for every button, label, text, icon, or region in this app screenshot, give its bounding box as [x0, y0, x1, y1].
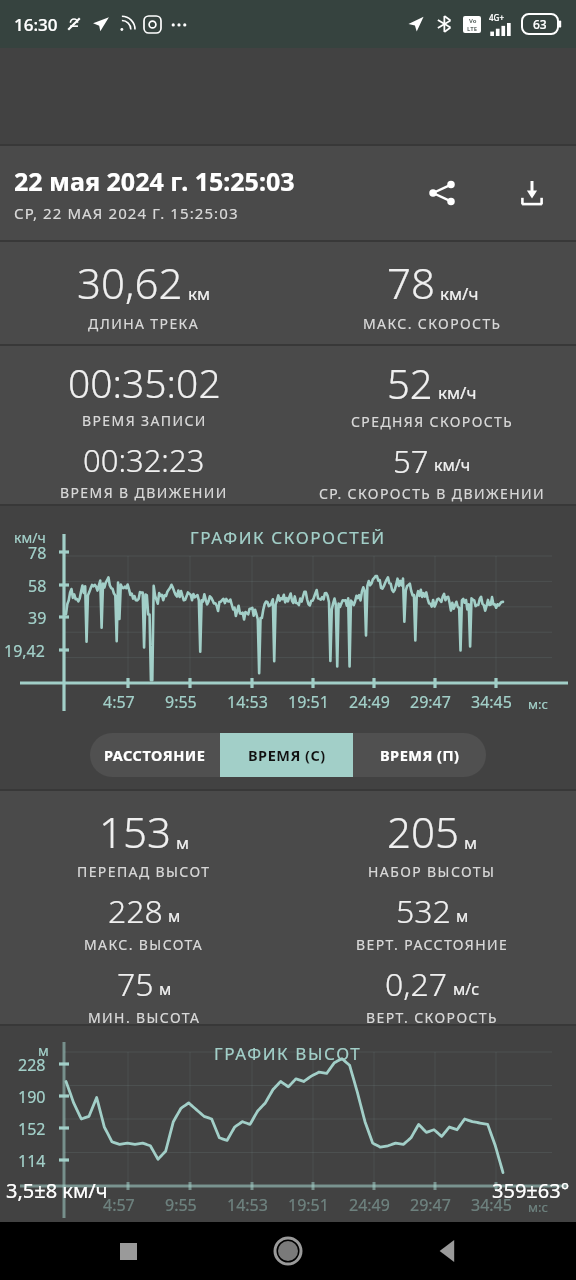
- button[interactable]: РАССТОЯНИЕ: [90, 733, 220, 777]
- staticText: 16:30: [14, 13, 58, 36]
- staticText: 4G+: [489, 12, 504, 23]
- staticText: МАКС. СКОРОСТЬ: [363, 314, 502, 333]
- staticText: 52: [387, 356, 433, 410]
- staticText: м: [38, 1041, 49, 1060]
- staticText: м/с: [453, 978, 480, 1000]
- staticText: 153: [99, 803, 171, 860]
- staticText: м: [456, 905, 469, 927]
- staticText: 190: [18, 1086, 46, 1108]
- staticText: 75: [117, 962, 154, 1006]
- staticText: 39: [28, 607, 47, 629]
- staticText: км/ч: [434, 454, 471, 476]
- staticText: м: [464, 831, 478, 854]
- staticText: 22 мая 2024 г. 15:25:03: [14, 164, 295, 198]
- staticText: ВРЕМЯ (С): [248, 745, 326, 765]
- staticText: 14:53: [227, 691, 268, 713]
- staticText: 78: [28, 542, 47, 564]
- staticText: Vo: [469, 17, 477, 25]
- staticText: 228: [18, 1054, 46, 1076]
- staticText: ДЛИНА ТРЕКА: [88, 314, 200, 333]
- staticText: 24:49: [349, 1194, 390, 1216]
- staticText: ВРЕМЯ (П): [380, 745, 460, 765]
- staticText: СРЕДНЯЯ СКОРОСТЬ: [351, 412, 514, 431]
- staticText: ВРЕМЯ В ДВИЖЕНИИ: [60, 483, 228, 502]
- staticText: 29:47: [410, 691, 451, 713]
- staticText: ВЕРТ. СКОРОСТЬ: [366, 1008, 498, 1024]
- staticText: 14:53: [227, 1194, 268, 1216]
- staticText: РАССТОЯНИЕ: [104, 745, 206, 765]
- staticText: 30,62: [77, 254, 183, 311]
- staticText: 00:32:23: [83, 439, 205, 481]
- staticText: 4:57: [103, 1194, 135, 1216]
- staticText: МИН. ВЫСОТА: [88, 1008, 201, 1024]
- button[interactable]: Back: [416, 1222, 480, 1280]
- staticText: 78: [387, 254, 435, 311]
- staticText: км/ч: [440, 282, 479, 305]
- staticText: м: [159, 978, 172, 1000]
- button[interactable]: Download: [504, 165, 560, 221]
- staticText: 19,42: [4, 640, 45, 662]
- staticText: ВЕРТ. РАССТОЯНИЕ: [356, 935, 509, 954]
- staticText: 57: [393, 440, 429, 482]
- staticText: 114: [18, 1150, 46, 1172]
- staticText: 34:45: [471, 1194, 512, 1216]
- staticText: 4:57: [103, 691, 135, 713]
- staticText: 532: [396, 889, 451, 933]
- staticText: 34:45: [471, 691, 512, 713]
- button[interactable]: Share: [414, 165, 470, 221]
- staticText: 9:55: [165, 1194, 197, 1216]
- staticText: ГРАФИК СКОРОСТЕЙ: [190, 526, 386, 549]
- staticText: СР. СКОРОСТЬ В ДВИЖЕНИИ: [319, 484, 545, 503]
- staticText: км: [188, 282, 211, 305]
- staticText: 152: [18, 1118, 46, 1140]
- staticText: ПЕРЕПАД ВЫСОТ: [77, 862, 211, 881]
- staticText: м: [176, 831, 190, 854]
- staticText: км/ч: [14, 528, 46, 547]
- staticText: НАБОР ВЫСОТЫ: [368, 862, 496, 881]
- staticText: 29:47: [410, 1194, 451, 1216]
- staticText: 58: [28, 575, 47, 597]
- button[interactable]: Home: [256, 1222, 320, 1280]
- staticText: м:с: [528, 1198, 548, 1216]
- staticText: 228: [108, 889, 163, 933]
- staticText: 00:35:02: [68, 356, 221, 409]
- staticText: 205: [387, 803, 459, 860]
- button[interactable]: Recents: [96, 1222, 160, 1280]
- staticText: ГРАФИК ВЫСОТ: [214, 1042, 362, 1065]
- staticText: 9:55: [165, 691, 197, 713]
- staticText: 19:51: [288, 691, 329, 713]
- button[interactable]: ВРЕМЯ (С): [220, 733, 353, 777]
- staticText: 3,5±8 км/ч: [6, 1177, 108, 1204]
- staticText: ВРЕМЯ ЗАПИСИ: [82, 411, 207, 430]
- staticText: 63: [533, 16, 547, 32]
- staticText: 24:49: [349, 691, 390, 713]
- staticText: км/ч: [438, 381, 477, 404]
- button[interactable]: ВРЕМЯ (П): [353, 733, 486, 777]
- staticText: 359±63°: [492, 1177, 570, 1204]
- staticText: МАКС. ВЫСОТА: [84, 935, 204, 954]
- staticText: СР, 22 МАЯ 2024 Г. 15:25:03: [14, 203, 239, 223]
- staticText: 0,27: [385, 962, 448, 1006]
- staticText: м: [168, 905, 181, 927]
- staticText: 19:51: [288, 1194, 329, 1216]
- staticText: LTE: [467, 25, 478, 33]
- staticText: м:с: [528, 695, 548, 713]
